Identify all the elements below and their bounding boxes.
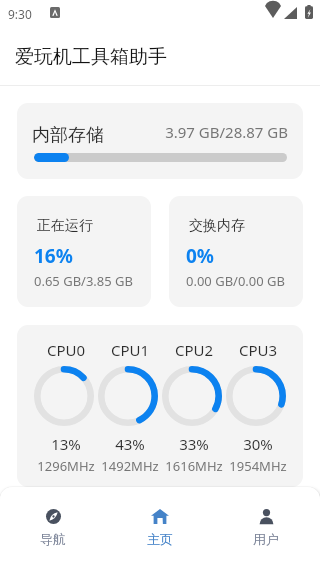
staticText: 0.00 GB/0.00 GB	[186, 272, 286, 290]
staticText: 主页	[120, 531, 200, 547]
staticText: CPU0	[34, 340, 98, 360]
staticText: 导航	[13, 531, 93, 547]
staticText: 用户	[226, 531, 306, 547]
staticText: 1616MHz	[162, 457, 226, 475]
button[interactable]: Home	[120, 487, 200, 568]
button[interactable]: User	[226, 487, 306, 568]
button[interactable]: 内部存储	[17, 103, 303, 179]
button[interactable]: CPU0	[17, 325, 303, 487]
button[interactable]: Navigation	[13, 487, 93, 568]
button[interactable]: 交换内存	[169, 196, 303, 307]
other: User	[259, 509, 274, 524]
staticText: 9:30	[8, 6, 32, 22]
staticText: 3.97 GB/28.87 GB	[164, 122, 288, 142]
staticText: 0%	[186, 243, 215, 269]
staticText: 正在运行	[37, 217, 93, 235]
staticText: 爱玩机工具箱助手	[15, 45, 167, 69]
staticText: CPU2	[162, 340, 226, 360]
staticText: 30%	[226, 434, 290, 454]
staticText: CPU3	[226, 340, 290, 360]
staticText: 1296MHz	[34, 457, 98, 475]
staticText: 0.65 GB/3.85 GB	[34, 272, 134, 290]
other: Home	[151, 509, 169, 524]
staticText: 16%	[34, 243, 73, 269]
staticText: 43%	[98, 434, 162, 454]
staticText: 内部存储	[32, 124, 104, 147]
staticText: 1954MHz	[226, 457, 290, 475]
other: Navigation	[46, 509, 61, 524]
staticText: CPU1	[98, 340, 162, 360]
staticText: 13%	[34, 434, 98, 454]
staticText: 交换内存	[189, 217, 245, 235]
staticText: 33%	[162, 434, 226, 454]
staticText: 1492MHz	[98, 457, 162, 475]
button[interactable]: 正在运行	[17, 196, 151, 307]
